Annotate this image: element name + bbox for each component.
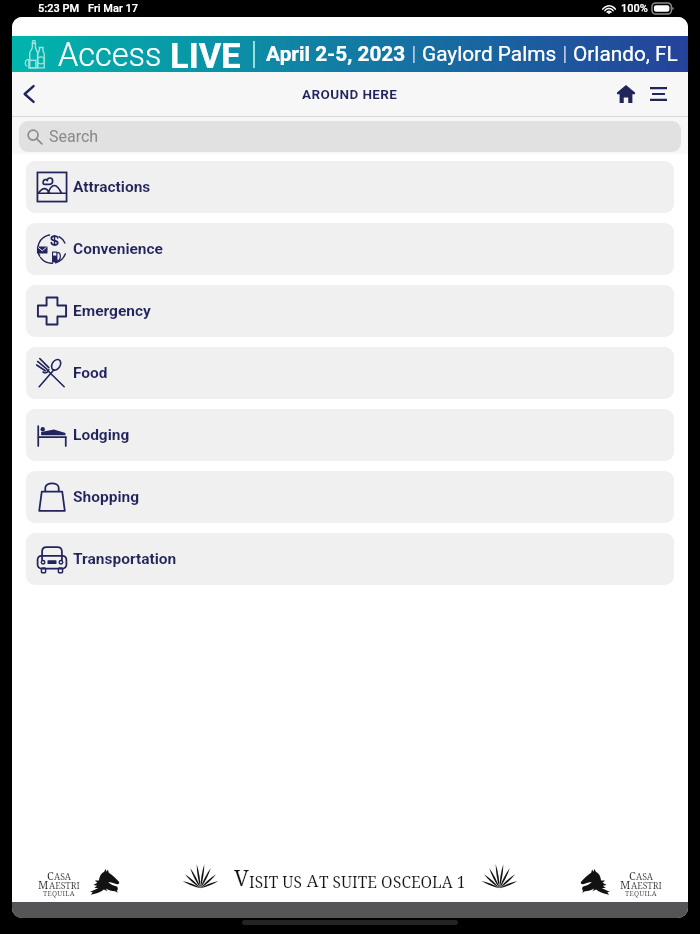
button[interactable]: Emergency bbox=[26, 285, 674, 337]
button[interactable]: Attractions bbox=[26, 161, 674, 213]
staticText: A bbox=[302, 869, 319, 892]
staticText: C bbox=[629, 868, 636, 883]
staticText: M bbox=[620, 877, 631, 892]
staticText: Lodging bbox=[73, 426, 130, 444]
staticText: AESTRI bbox=[631, 880, 662, 892]
staticText: Attractions bbox=[73, 178, 151, 196]
button[interactable]: Menu bbox=[642, 78, 674, 110]
staticText: T S bbox=[319, 871, 341, 892]
staticText: Orlando, FL bbox=[573, 42, 678, 66]
staticText: Food bbox=[73, 364, 108, 382]
staticText: Fri Mar 17 bbox=[88, 2, 139, 15]
staticText: April 2-5, 2023 bbox=[266, 42, 406, 66]
staticText: AROUND HERE bbox=[302, 86, 398, 102]
button[interactable]: Search bbox=[19, 121, 681, 152]
staticText: 100% bbox=[621, 2, 648, 15]
button[interactable]: Transportation bbox=[26, 533, 674, 585]
staticText: LIVE bbox=[170, 36, 241, 72]
staticText: | bbox=[557, 42, 573, 66]
staticText: Shopping bbox=[73, 488, 140, 506]
staticText: SCEOLA 1 bbox=[393, 871, 466, 892]
button[interactable]: Back bbox=[12, 77, 46, 111]
button[interactable]: Convenience bbox=[26, 223, 674, 275]
button[interactable]: Lodging bbox=[26, 409, 674, 461]
staticText: M bbox=[38, 877, 49, 892]
staticText: Convenience bbox=[73, 240, 163, 258]
staticText: ASA bbox=[54, 871, 72, 883]
staticText: Gaylord Palms bbox=[422, 42, 557, 66]
staticText: ISIT US bbox=[249, 871, 302, 892]
button[interactable]: Home bbox=[610, 78, 642, 110]
staticText: Access bbox=[58, 36, 170, 72]
button[interactable]: Shopping bbox=[26, 471, 674, 523]
staticText: | bbox=[406, 42, 422, 66]
staticText: 5:23 PM bbox=[38, 2, 80, 15]
staticText: Emergency bbox=[73, 302, 151, 320]
staticText: UITE O bbox=[341, 871, 393, 892]
staticText: Search bbox=[49, 127, 99, 146]
staticText: C bbox=[47, 868, 54, 883]
staticText: TEQUILA bbox=[43, 889, 75, 898]
staticText: ASA bbox=[636, 871, 654, 883]
staticText: TEQUILA bbox=[625, 889, 657, 898]
button[interactable]: Food bbox=[26, 347, 674, 399]
staticText: V bbox=[234, 862, 249, 892]
staticText: Transportation bbox=[73, 550, 177, 568]
staticText: AESTRI bbox=[49, 880, 80, 892]
